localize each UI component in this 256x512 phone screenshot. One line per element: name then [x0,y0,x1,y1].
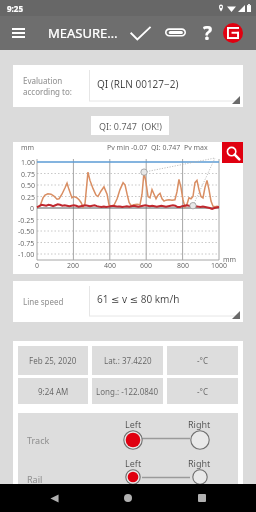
button[interactable]: Recents [182,484,222,512]
staticText: Lat.: 37.4220 [104,355,152,366]
button[interactable]: -°C [167,346,238,375]
staticText: MEASURE… [48,24,118,42]
staticText: QI: 0.747 (OK!) [99,120,162,132]
staticText: Pv min -0.07 QI: 0.747 Pv max [107,143,208,153]
staticText: mm [223,255,237,265]
button[interactable]: Left [123,430,143,450]
button[interactable]: Line speed [13,281,243,322]
staticText: Right [188,418,211,430]
button[interactable]: Attach [161,19,189,47]
button[interactable]: Confirm [126,19,154,47]
staticText: 1.00 [21,158,35,168]
button[interactable]: QI: 0.747 (OK!) [91,116,169,135]
button[interactable]: Right [190,430,210,450]
staticText: 800 [177,261,190,271]
staticText: -0.25 [18,216,35,226]
staticText: QI (RLN 00127−2) [97,77,179,91]
staticText: -°C [197,355,209,366]
button[interactable]: Home [108,484,148,512]
staticText: Evaluation according to: [23,75,89,97]
button[interactable]: Right [190,469,210,485]
staticText: 9:24 AM [38,386,69,397]
staticText: Track [27,434,50,446]
staticText: Right [188,457,211,469]
staticText: -1.00 [18,250,35,260]
staticText: 0.75 [21,170,35,180]
staticText: 1000 [211,261,228,271]
staticText: 0.50 [21,181,35,191]
button[interactable]: Feb 25, 2020 [18,346,88,375]
staticText: Long.: -122.0840 [96,386,159,397]
button[interactable]: Left [123,469,143,485]
staticText: 9:25 [7,3,23,14]
button[interactable]: Lat.: 37.4220 [92,346,163,375]
staticText: 0.25 [21,193,35,203]
staticText: ? [203,20,213,46]
staticText: Left [125,457,142,469]
button[interactable]: Record [219,19,247,47]
staticText: 600 [140,261,153,271]
staticText: Line speed [23,296,89,307]
button[interactable]: Help [194,19,222,47]
button[interactable]: Back [34,484,74,512]
staticText: -0.50 [18,227,35,237]
staticText: 0 [35,261,40,271]
button[interactable]: 9:24 AM [18,378,88,404]
staticText: 400 [104,261,117,271]
button[interactable]: -°C [167,378,238,404]
staticText: mm [21,143,35,153]
staticText: Feb 25, 2020 [29,355,77,366]
staticText: -°C [197,386,209,397]
button[interactable]: Zoom [222,142,243,163]
staticText: Rail [27,473,43,485]
staticText: 0 [30,204,35,214]
staticText: -0.75 [18,239,35,249]
staticText: 61 ≤ v ≤ 80 km/h [97,292,180,306]
button[interactable]: Menu [4,19,32,47]
button[interactable]: Evaluation according to: [13,65,243,107]
staticText: 200 [67,261,80,271]
staticText: Left [125,418,142,430]
button[interactable]: Long.: -122.0840 [92,378,163,404]
